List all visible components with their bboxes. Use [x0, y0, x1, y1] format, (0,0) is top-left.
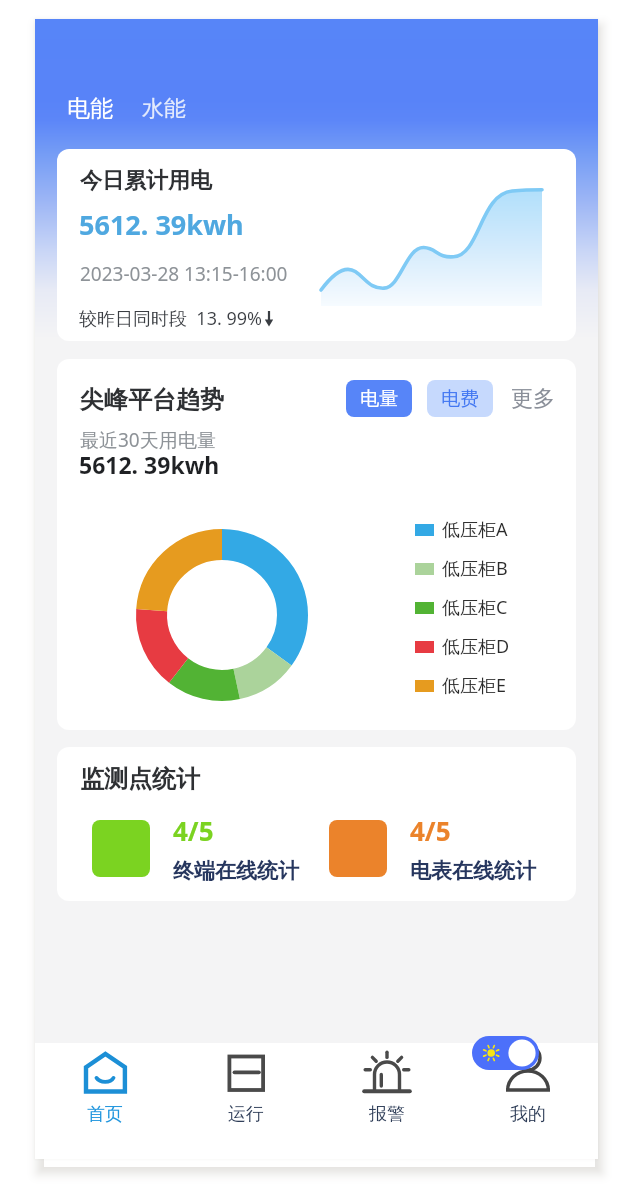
staticText: 监测点统计 — [80, 764, 200, 794]
staticText: 电表在线统计 — [410, 858, 536, 884]
button[interactable]: 电量 — [346, 380, 412, 417]
button[interactable]: 水能 — [142, 95, 186, 123]
staticText: 最近30天用电量 — [80, 427, 216, 453]
other: Alarm — [365, 1051, 409, 1095]
button[interactable]: Theme toggle — [472, 1036, 539, 1070]
button[interactable]: 电能 — [67, 94, 113, 123]
staticText: 水能 — [142, 95, 186, 123]
staticText: 报警 — [369, 1103, 405, 1126]
staticText: 4/5 — [173, 813, 214, 848]
button[interactable]: 4/5 — [92, 813, 299, 884]
other: Profile — [506, 1051, 550, 1095]
staticText: 电能 — [67, 94, 113, 123]
staticText: 4/5 — [410, 813, 451, 848]
staticText: 5612. 39kwh — [79, 206, 244, 243]
staticText: 今日累计用电 — [80, 167, 212, 195]
staticText: 低压柜C — [442, 595, 508, 620]
other: Run — [224, 1051, 268, 1095]
staticText: 我的 — [510, 1103, 546, 1126]
staticText: 尖峰平台趋势 — [80, 385, 224, 415]
button[interactable]: 更多 — [511, 385, 555, 413]
staticText: 较昨日同时段 13. 99% — [79, 306, 263, 331]
button[interactable]: 低压柜B — [415, 549, 508, 588]
button[interactable]: 低压柜E — [415, 666, 507, 705]
staticText: 电费 — [441, 387, 479, 411]
button[interactable]: Alarm — [316, 1043, 457, 1159]
button[interactable]: Home — [35, 1043, 175, 1159]
button[interactable]: Profile — [457, 1043, 598, 1159]
button[interactable]: 低压柜C — [415, 588, 508, 627]
button[interactable]: 今日累计用电 — [57, 149, 576, 341]
button[interactable]: Run — [175, 1043, 316, 1159]
button[interactable]: 4/5 — [329, 813, 536, 884]
staticText: 终端在线统计 — [173, 858, 299, 884]
other: Home — [83, 1051, 127, 1095]
staticText: 2023-03-28 13:15-16:00 — [80, 261, 288, 287]
staticText: 低压柜A — [442, 517, 508, 542]
button[interactable]: 低压柜D — [415, 627, 510, 666]
staticText: 5612. 39kwh — [79, 449, 220, 480]
staticText: 低压柜D — [442, 634, 510, 659]
button[interactable]: 低压柜A — [415, 510, 508, 549]
staticText: 低压柜B — [442, 556, 508, 581]
staticText: 运行 — [228, 1103, 264, 1126]
button[interactable]: 电费 — [427, 380, 493, 417]
staticText: 低压柜E — [442, 673, 507, 698]
staticText: 电量 — [360, 387, 398, 411]
staticText: 首页 — [87, 1103, 123, 1126]
staticText: 更多 — [511, 385, 555, 413]
